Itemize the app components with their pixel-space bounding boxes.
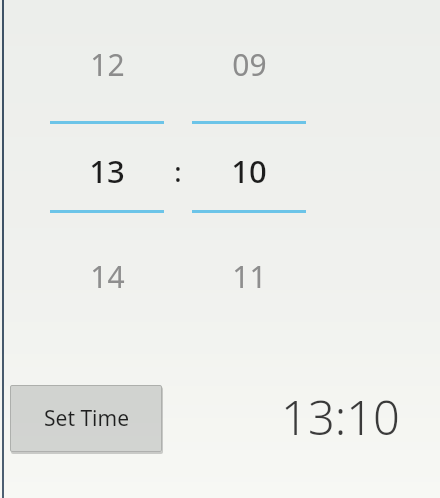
button[interactable]: Minute next [189,246,309,306]
button[interactable]: Set Time [10,385,162,452]
button[interactable]: Hour value [47,140,167,202]
button[interactable]: Hour next [47,246,167,306]
staticText: : [174,153,182,190]
staticText: 11 [232,256,267,297]
staticText: 12 [90,44,125,85]
button[interactable]: Minute previous [189,34,309,94]
staticText: 14 [90,256,125,297]
staticText: 10 [231,150,267,192]
staticText: 13 [89,150,125,192]
staticText: 09 [232,44,267,85]
staticText: 13:10 [281,385,400,449]
staticText: Set Time [44,404,129,433]
button[interactable]: Hour previous [47,34,167,94]
button[interactable]: Minute value [189,140,309,202]
